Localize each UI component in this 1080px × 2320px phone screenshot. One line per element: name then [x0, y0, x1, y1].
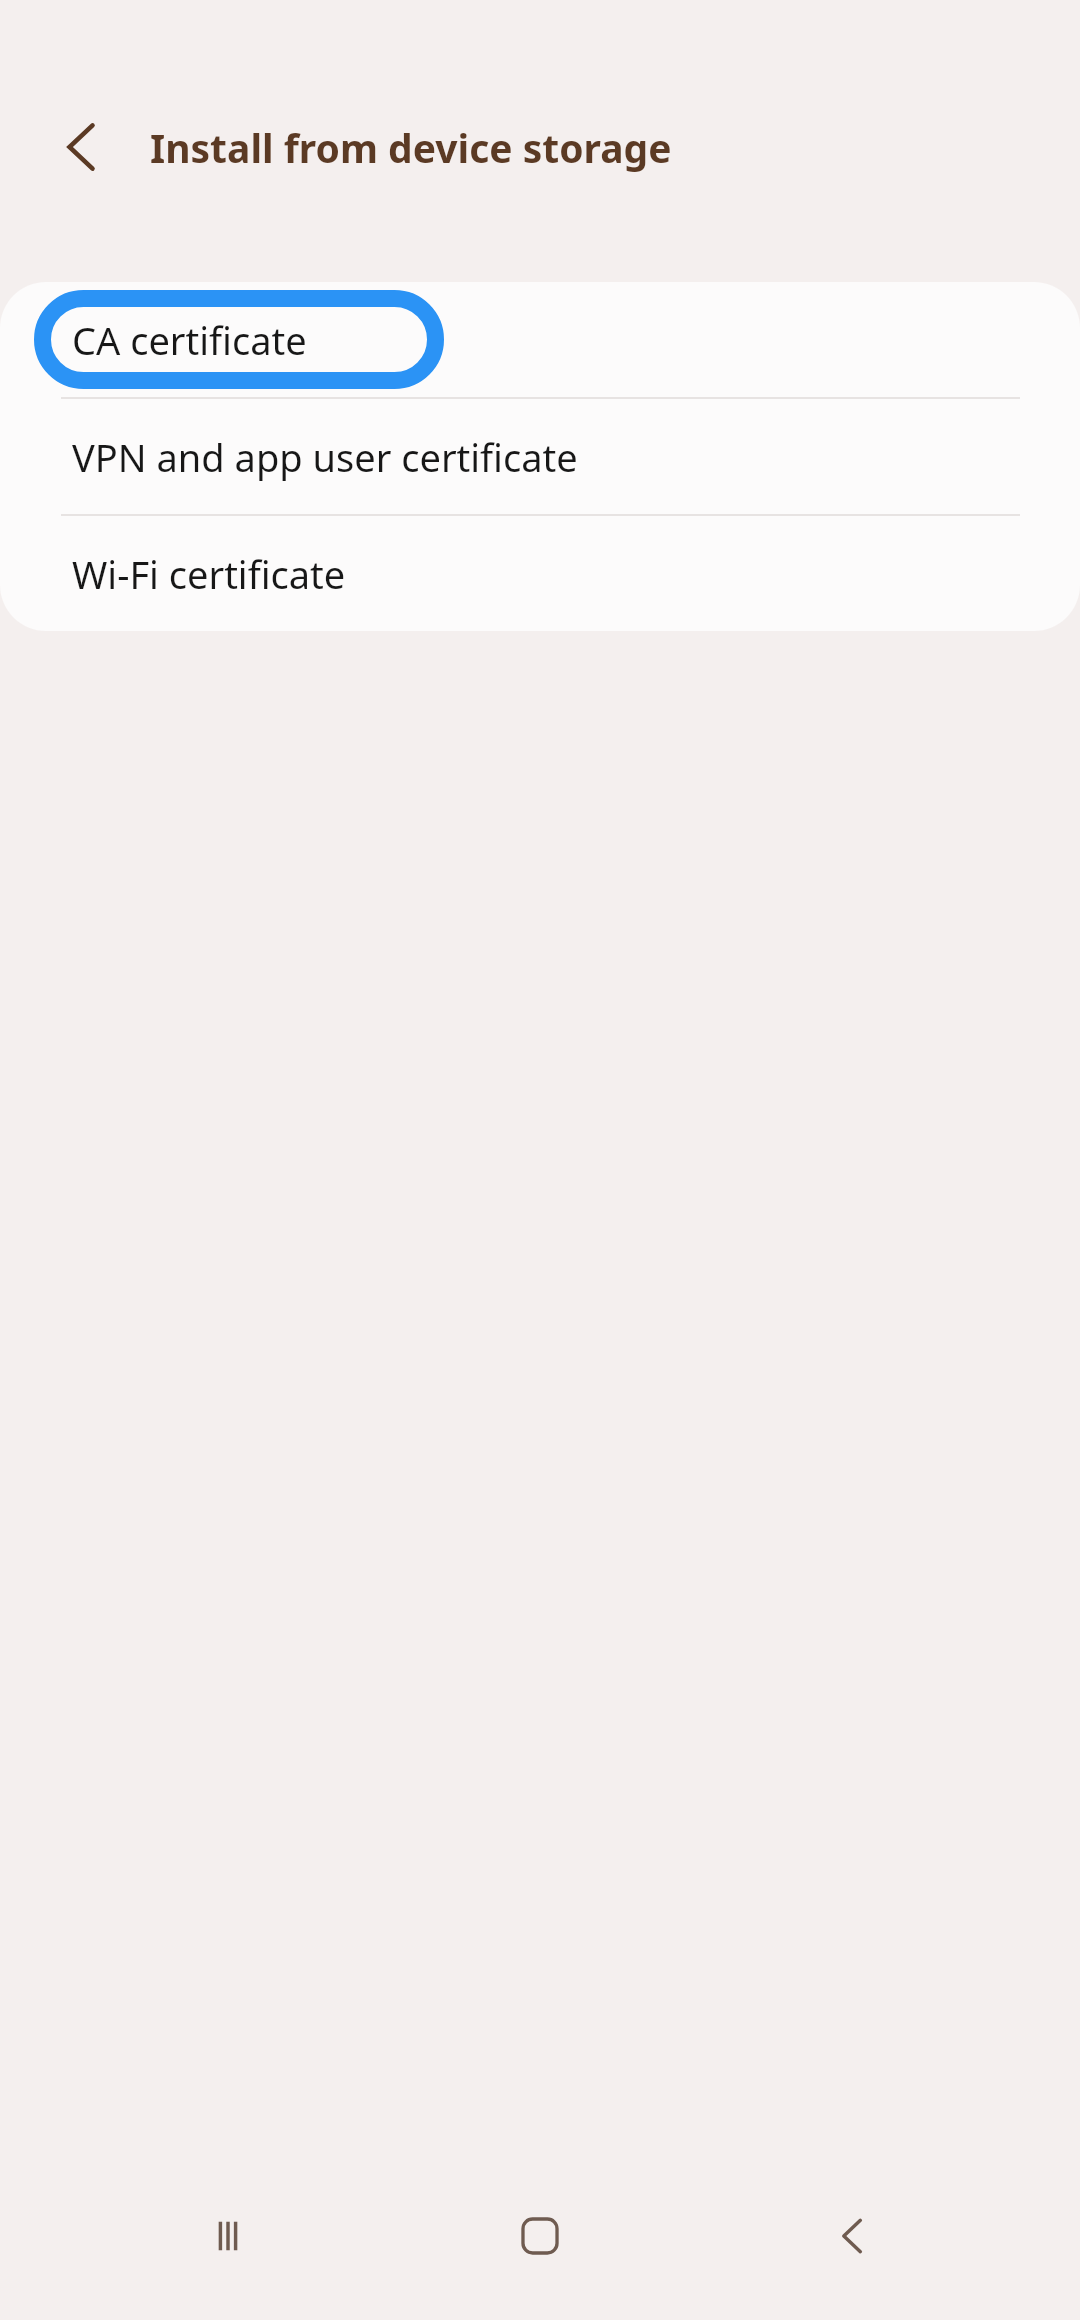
staticText: Install from device storage [150, 121, 672, 174]
button[interactable]: VPN and app user certificate [0, 399, 1080, 514]
staticText: CA certificate [72, 314, 307, 366]
staticText: VPN and app user certificate [72, 431, 578, 483]
button[interactable]: Home [455, 2152, 625, 2320]
button[interactable]: Wi-Fi certificate [0, 516, 1080, 631]
button[interactable]: Navigate up [42, 108, 120, 186]
button[interactable]: Back [768, 2152, 938, 2320]
button[interactable]: Recent apps [143, 2152, 313, 2320]
button[interactable]: CA certificate [0, 282, 1080, 397]
staticText: Wi-Fi certificate [72, 548, 346, 600]
